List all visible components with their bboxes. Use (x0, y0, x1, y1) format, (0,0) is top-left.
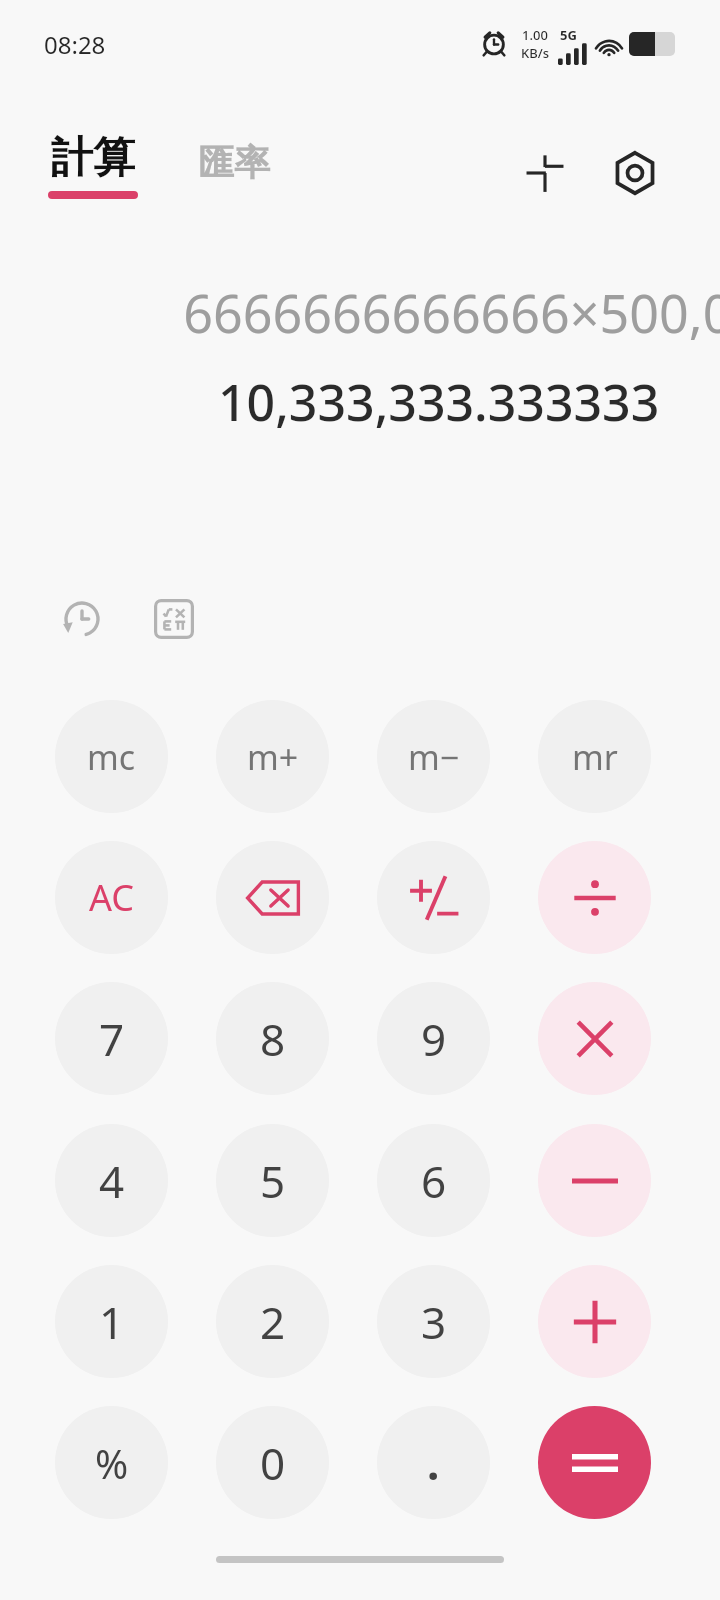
button[interactable]: 5 (216, 1124, 329, 1237)
staticText: 2 (260, 1292, 286, 1352)
staticText: 10,333,333.333333 (218, 368, 660, 436)
staticText: mr (572, 734, 618, 780)
staticText: 5G (560, 26, 577, 44)
button[interactable]: 4 (55, 1124, 168, 1237)
button[interactable]: % (55, 1406, 168, 1519)
button[interactable]: 0 (216, 1406, 329, 1519)
staticText: 0 (260, 1433, 286, 1493)
button[interactable]: Backspace (216, 841, 329, 954)
button[interactable]: AC (55, 841, 168, 954)
staticText: 9 (421, 1009, 447, 1069)
button[interactable]: Scientific mode (142, 587, 206, 651)
staticText: 6666666666666×500,000 (183, 277, 720, 348)
button[interactable]: mr (538, 700, 651, 813)
button[interactable]: Divide (538, 841, 651, 954)
staticText: mc (87, 734, 136, 780)
button[interactable]: 匯率 (192, 140, 276, 185)
button[interactable]: m− (377, 700, 490, 813)
staticText: 4 (99, 1151, 125, 1211)
button[interactable]: . (377, 1406, 490, 1519)
button[interactable]: Split screen (508, 136, 582, 210)
staticText: m+ (247, 734, 299, 780)
staticText: 匯率 (198, 140, 270, 185)
button[interactable]: Plus minus (377, 841, 490, 954)
staticText: . (427, 1433, 440, 1493)
staticText: % (95, 1436, 129, 1490)
staticText: 8 (260, 1009, 286, 1069)
button[interactable]: Multiply (538, 982, 651, 1095)
staticText: AC (89, 873, 135, 922)
button[interactable]: 計算 (44, 132, 142, 199)
staticText: 3 (421, 1292, 447, 1352)
button[interactable]: 8 (216, 982, 329, 1095)
button[interactable]: 1 (55, 1265, 168, 1378)
staticText: 1 (99, 1292, 125, 1352)
staticText: 08:28 (44, 28, 106, 61)
button[interactable]: 2 (216, 1265, 329, 1378)
staticText: 5 (260, 1151, 286, 1211)
button[interactable]: Settings (598, 136, 672, 210)
button[interactable]: mc (55, 700, 168, 813)
button[interactable]: m+ (216, 700, 329, 813)
staticText: m− (408, 734, 460, 780)
button[interactable]: 6 (377, 1124, 490, 1237)
staticText: 7 (99, 1009, 125, 1069)
staticText: 1.00 (522, 26, 548, 44)
button[interactable]: 7 (55, 982, 168, 1095)
button[interactable]: 3 (377, 1265, 490, 1378)
button[interactable]: History (50, 587, 114, 651)
button[interactable]: Minus (538, 1124, 651, 1237)
staticText: 6 (421, 1151, 447, 1211)
button[interactable]: 9 (377, 982, 490, 1095)
staticText: 計算 (51, 132, 135, 185)
button[interactable]: Plus (538, 1265, 651, 1378)
staticText: KB/s (521, 44, 550, 62)
button[interactable]: Equals (538, 1406, 651, 1519)
